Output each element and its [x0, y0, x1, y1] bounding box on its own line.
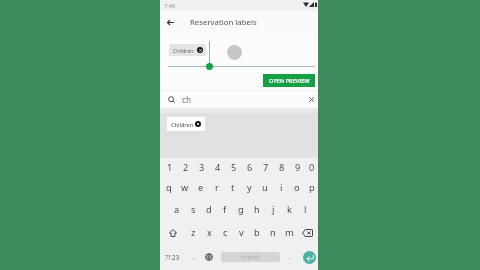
button[interactable]: r — [209, 177, 225, 198]
button[interactable]: g — [233, 198, 249, 221]
button[interactable]: Backspace — [297, 221, 318, 244]
staticText: 7:46 — [164, 2, 176, 10]
button[interactable]: 7 — [258, 158, 274, 177]
button[interactable]: i — [273, 177, 289, 198]
button[interactable]: Children — [169, 44, 206, 56]
staticText: 1 — [167, 161, 173, 174]
staticText: p — [309, 181, 315, 194]
button[interactable]: o — [289, 177, 305, 198]
staticText: 9 — [295, 161, 301, 174]
button[interactable]: k — [281, 198, 297, 221]
button[interactable]: 6 — [242, 158, 258, 177]
staticText: Children — [171, 121, 194, 128]
staticText: y — [247, 181, 252, 194]
staticText: o — [294, 181, 300, 194]
staticText: e — [198, 181, 204, 194]
staticText: ?123 — [165, 253, 180, 262]
staticText: v — [239, 226, 244, 239]
button[interactable]: c — [217, 221, 233, 244]
button[interactable]: 8 — [274, 158, 290, 177]
staticText: . — [289, 252, 291, 262]
button[interactable]: Shift — [160, 221, 185, 244]
staticText: b — [254, 226, 260, 239]
button[interactable]: 9 — [290, 158, 306, 177]
staticText: n — [270, 226, 276, 239]
button[interactable]: j — [265, 198, 281, 221]
staticText: c — [223, 226, 228, 239]
staticText: a — [174, 203, 180, 216]
button[interactable]: 4 — [210, 158, 226, 177]
button[interactable]: Children — [167, 117, 205, 131]
button[interactable]: a — [169, 198, 185, 221]
button[interactable]: 0 — [306, 158, 318, 177]
staticText: t — [231, 181, 235, 194]
staticText: m — [285, 226, 294, 239]
staticText: English — [241, 253, 261, 261]
button[interactable]: x — [201, 221, 217, 244]
button[interactable]: 2 — [178, 158, 194, 177]
staticText: h — [254, 203, 260, 216]
button[interactable]: Clear search — [304, 92, 318, 106]
button[interactable]: d — [201, 198, 217, 221]
staticText: ch — [182, 94, 191, 105]
staticText: j — [272, 203, 275, 216]
button[interactable]: 3 — [194, 158, 210, 177]
button[interactable]: q — [161, 177, 177, 198]
staticText: u — [262, 181, 268, 194]
button[interactable]: 5 — [226, 158, 242, 177]
staticText: 8 — [279, 161, 285, 174]
staticText: 6 — [247, 161, 253, 174]
staticText: l — [304, 203, 307, 216]
staticText: 2 — [183, 161, 189, 174]
button[interactable]: 1 — [162, 158, 178, 177]
button[interactable]: OPEN PREVIEW — [263, 74, 315, 87]
button[interactable]: Enter — [300, 244, 319, 270]
button[interactable]: s — [185, 198, 201, 221]
staticText: 7 — [263, 161, 269, 174]
staticText: k — [287, 203, 292, 216]
staticText: 0 — [309, 161, 315, 174]
staticText: z — [191, 226, 196, 239]
button[interactable]: u — [257, 177, 273, 198]
button[interactable]: Back — [163, 15, 178, 30]
staticText: w — [181, 181, 189, 194]
button[interactable]: f — [217, 198, 233, 221]
button[interactable]: . — [282, 244, 297, 270]
staticText: 4 — [215, 161, 221, 174]
button[interactable]: v — [233, 221, 249, 244]
button[interactable]: b — [249, 221, 265, 244]
button[interactable]: English — [221, 252, 280, 262]
staticText: x — [207, 226, 212, 239]
button[interactable]: ?123 — [161, 244, 183, 270]
staticText: q — [166, 181, 172, 194]
button[interactable]: , — [186, 244, 201, 270]
staticText: Reservation labels — [190, 17, 257, 28]
staticText: d — [206, 203, 212, 216]
button[interactable]: z — [185, 221, 201, 244]
button[interactable]: l — [297, 198, 313, 221]
button[interactable]: w — [177, 177, 193, 198]
button[interactable]: y — [241, 177, 257, 198]
staticText: s — [191, 203, 196, 216]
staticText: 3 — [199, 161, 205, 174]
button[interactable]: p — [305, 177, 318, 198]
staticText: i — [280, 181, 283, 194]
button[interactable]: m — [281, 221, 297, 244]
staticText: Children — [173, 47, 194, 54]
staticText: , — [193, 252, 195, 262]
button[interactable]: e — [193, 177, 209, 198]
staticText: g — [238, 203, 244, 216]
button[interactable]: Change language — [201, 244, 216, 270]
staticText: 5 — [231, 161, 237, 174]
staticText: r — [215, 181, 219, 194]
staticText: OPEN PREVIEW — [269, 77, 310, 85]
button[interactable]: n — [265, 221, 281, 244]
button[interactable]: t — [225, 177, 241, 198]
staticText: f — [223, 203, 227, 216]
button[interactable]: h — [249, 198, 265, 221]
